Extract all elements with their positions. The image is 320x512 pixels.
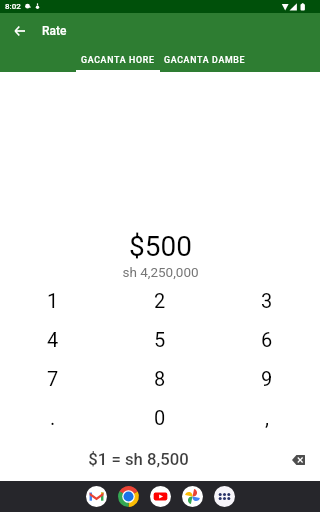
staticText: $1 = sh 8,500 <box>88 450 189 470</box>
staticText: 3 <box>261 289 273 312</box>
staticText: . <box>50 406 56 429</box>
button[interactable]: Backspace <box>277 446 320 474</box>
button[interactable]: 5 <box>106 320 213 359</box>
staticText: GACANTA HORE <box>81 55 155 65</box>
button[interactable]: Photos <box>182 486 203 507</box>
staticText: 5 <box>154 328 166 351</box>
button[interactable]: GACANTA HORE <box>76 49 160 71</box>
staticText: 6 <box>261 328 273 351</box>
button[interactable]: . <box>0 398 106 437</box>
button[interactable]: 7 <box>0 359 106 398</box>
button[interactable]: 2 <box>106 281 213 320</box>
button[interactable]: Back <box>0 13 40 50</box>
button[interactable]: Chrome <box>118 486 139 507</box>
button[interactable]: 3 <box>213 281 320 320</box>
staticText: $500 <box>129 230 192 263</box>
staticText: 8:02 <box>5 2 21 11</box>
staticText: GACANTA DAMBE <box>164 55 246 65</box>
button[interactable]: 8 <box>106 359 213 398</box>
staticText: 7 <box>47 367 59 390</box>
staticText: 4 <box>47 328 59 351</box>
button[interactable]: , <box>213 398 320 437</box>
button[interactable]: 9 <box>213 359 320 398</box>
button[interactable]: Gmail <box>86 486 107 507</box>
button[interactable]: 4 <box>0 320 106 359</box>
staticText: 2 <box>154 289 166 312</box>
button[interactable]: 1 <box>0 281 106 320</box>
staticText: 1 <box>47 289 59 312</box>
button[interactable]: GACANTA DAMBE <box>160 49 250 71</box>
staticText: , <box>265 406 269 429</box>
staticText: Rate <box>42 24 67 38</box>
button[interactable]: 6 <box>213 320 320 359</box>
button[interactable]: YouTube <box>150 486 171 507</box>
staticText: sh 4,250,000 <box>122 264 199 280</box>
staticText: 9 <box>261 367 273 390</box>
button[interactable]: All apps <box>214 486 235 507</box>
staticText: 8 <box>154 367 166 390</box>
button[interactable]: 0 <box>106 398 213 437</box>
staticText: 0 <box>154 406 166 429</box>
